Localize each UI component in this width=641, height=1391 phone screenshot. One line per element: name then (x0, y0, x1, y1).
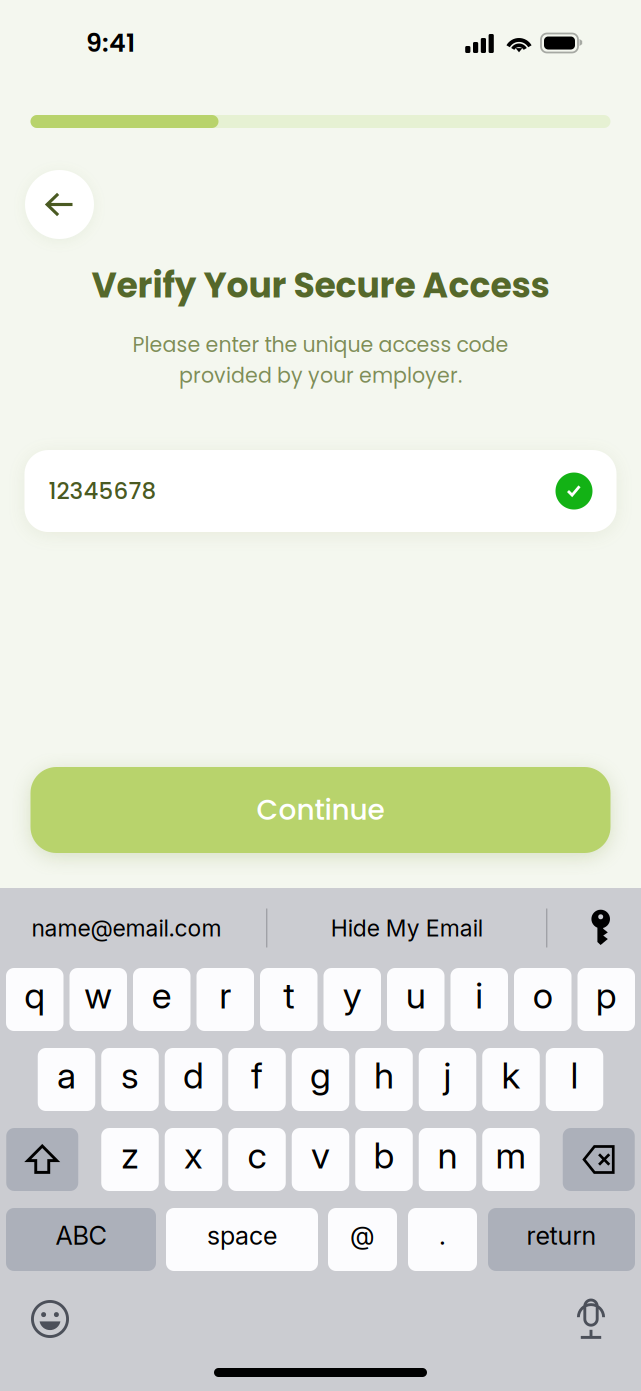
button[interactable]: y (323, 968, 381, 1031)
button[interactable]: Delete (563, 1128, 635, 1191)
button[interactable]: o (514, 968, 571, 1031)
staticText: @ (350, 1220, 375, 1251)
staticText: y (343, 974, 362, 1017)
staticText: l (570, 1054, 578, 1097)
staticText: Continue (256, 790, 384, 830)
button[interactable]: p (577, 968, 635, 1031)
button[interactable]: n (419, 1128, 476, 1191)
button[interactable]: e (133, 968, 190, 1031)
staticText: i (475, 974, 483, 1017)
button[interactable]: v (292, 1128, 349, 1191)
staticText: . (439, 1220, 446, 1251)
button[interactable]: Emoji (18, 1292, 82, 1346)
staticText: s (121, 1054, 139, 1097)
staticText: a (57, 1054, 76, 1097)
button[interactable]: Continue (30, 767, 610, 853)
staticText: g (310, 1054, 331, 1097)
staticText: x (184, 1134, 203, 1177)
staticText: t (283, 974, 294, 1017)
staticText: h (374, 1054, 394, 1097)
staticText: m (495, 1134, 526, 1177)
staticText: d (183, 1054, 204, 1097)
button[interactable]: l (546, 1048, 603, 1111)
button[interactable]: h (355, 1048, 413, 1111)
staticText: j (443, 1054, 451, 1097)
staticText: Verify Your Secure Access (91, 261, 549, 309)
button[interactable]: Shift (6, 1128, 78, 1191)
staticText: o (533, 974, 553, 1017)
button[interactable]: a (38, 1048, 95, 1111)
staticText: w (84, 974, 112, 1017)
staticText: space (207, 1220, 277, 1251)
button[interactable]: Passwords (547, 900, 641, 956)
button[interactable]: Hide My Email (267, 900, 546, 956)
staticText: p (596, 974, 617, 1017)
button[interactable]: ABC (6, 1208, 156, 1271)
staticText: n (437, 1134, 457, 1177)
button[interactable]: m (482, 1128, 540, 1191)
button[interactable]: z (101, 1128, 159, 1191)
staticText: e (152, 974, 172, 1017)
staticText: Hide My Email (331, 914, 483, 942)
staticText: 9:41 (86, 25, 135, 61)
button[interactable]: c (228, 1128, 286, 1191)
staticText: r (219, 974, 231, 1017)
button[interactable]: i (450, 968, 508, 1031)
button[interactable]: q (6, 968, 63, 1031)
staticText: c (247, 1134, 266, 1177)
button[interactable]: Dictation (559, 1292, 623, 1346)
staticText: f (251, 1054, 263, 1097)
button[interactable]: return (488, 1208, 635, 1271)
button[interactable]: s (101, 1048, 159, 1111)
button[interactable]: @ (328, 1208, 397, 1271)
staticText: provided by your employer. (179, 361, 462, 390)
staticText: ABC (55, 1220, 106, 1251)
staticText: return (526, 1220, 596, 1251)
staticText: k (501, 1054, 520, 1097)
staticText: z (121, 1134, 139, 1177)
button[interactable]: r (196, 968, 254, 1031)
staticText: 12345678 (48, 475, 156, 507)
button[interactable]: d (165, 1048, 222, 1111)
staticText: v (311, 1134, 330, 1177)
button[interactable]: g (292, 1048, 349, 1111)
button[interactable]: b (355, 1128, 413, 1191)
button[interactable]: j (419, 1048, 476, 1111)
button[interactable]: w (69, 968, 127, 1031)
button[interactable]: f (228, 1048, 286, 1111)
staticText: u (406, 974, 426, 1017)
button[interactable]: x (165, 1128, 222, 1191)
staticText: q (24, 974, 45, 1017)
button[interactable]: space (166, 1208, 318, 1271)
button[interactable]: . (408, 1208, 477, 1271)
staticText: name@email.com (31, 914, 221, 942)
button[interactable]: name@email.com (0, 900, 253, 956)
button[interactable]: t (260, 968, 317, 1031)
button[interactable]: u (387, 968, 444, 1031)
staticText: b (373, 1134, 394, 1177)
button[interactable]: k (482, 1048, 540, 1111)
button[interactable]: Back (25, 170, 94, 239)
staticText: Please enter the unique access code (132, 330, 508, 359)
